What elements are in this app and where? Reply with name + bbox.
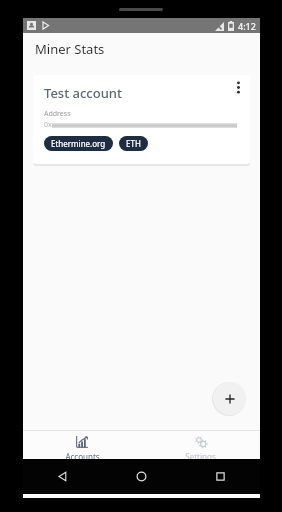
button[interactable]: Add account xyxy=(213,382,246,415)
button[interactable]: Test account xyxy=(33,75,250,164)
button[interactable]: More options xyxy=(226,75,250,99)
staticText: Settings xyxy=(185,451,216,462)
button[interactable]: Home xyxy=(102,459,181,494)
button[interactable]: Settings xyxy=(141,431,260,466)
button[interactable]: Ethermine.org xyxy=(44,136,113,151)
staticText: Ethermine.org xyxy=(51,138,106,149)
staticText: Test account xyxy=(44,84,122,102)
staticText: 4:12 xyxy=(238,20,256,32)
staticText: Miner Stats xyxy=(35,40,105,58)
staticText: Accounts xyxy=(65,451,100,462)
button[interactable]: ETH xyxy=(119,136,148,151)
staticText: 0x xyxy=(44,120,52,130)
button[interactable]: Back xyxy=(23,459,102,494)
button[interactable]: Recent apps xyxy=(181,459,260,494)
staticText: Address xyxy=(44,109,71,119)
staticText: ETH xyxy=(126,138,141,149)
button[interactable]: Accounts xyxy=(23,431,141,466)
